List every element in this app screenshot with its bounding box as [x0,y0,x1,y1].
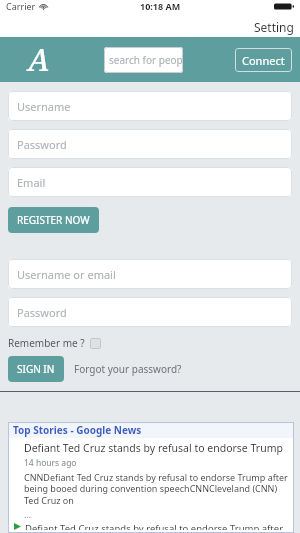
staticText: Connect [242,53,285,68]
staticText: Carrier [6,0,36,12]
staticText: REGISTER NOW [17,213,90,227]
button[interactable]: Password [8,297,292,327]
staticText: Password [17,137,67,152]
staticText: … [24,508,32,520]
staticText: 14 hours ago [24,457,77,469]
button[interactable]: Remember me ? [8,336,101,350]
staticText: Defiant Ted Cruz stands by refusal to en… [24,441,290,455]
button[interactable]: Defiant Ted Cruz stands by refusal to en… [8,438,294,520]
staticText: SIGN IN [17,362,55,376]
staticText: Username [17,99,71,114]
staticText: Defiant Ted Cruz stands by refusal to en… [25,522,290,530]
button[interactable]: Email [8,167,292,197]
staticText: search for peop [109,53,183,67]
button[interactable]: Home [28,39,50,80]
staticText: A [28,39,50,80]
staticText: Setting [254,19,294,35]
button[interactable]: Setting [254,19,294,35]
staticText: 10:18 AM [140,0,181,12]
button[interactable]: search for peop [104,47,183,73]
button[interactable]: Username [8,91,292,121]
button[interactable]: Forgot your password? [74,362,182,376]
staticText: Password [17,305,67,320]
button[interactable]: REGISTER NOW [8,207,99,233]
staticText: Remember me ? [8,336,85,350]
button[interactable]: Top Stories - Google News [8,422,294,438]
button[interactable]: Connect [235,48,292,72]
staticText: CNNDefiant Ted Cruz stands by refusal to… [24,471,290,507]
staticText: Forgot your password? [74,362,182,376]
staticText: Username or email [17,267,116,282]
button[interactable]: Defiant Ted Cruz stands by refusal to en… [8,522,294,533]
staticText: Top Stories - Google News [13,423,142,437]
staticText: Email [17,175,46,190]
button[interactable]: Username or email [8,259,292,289]
button[interactable]: Password [8,129,292,159]
button[interactable]: SIGN IN [8,356,64,382]
